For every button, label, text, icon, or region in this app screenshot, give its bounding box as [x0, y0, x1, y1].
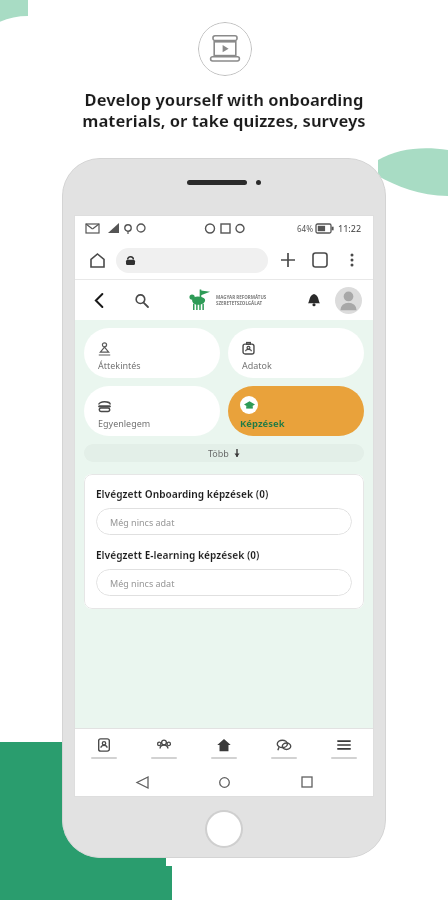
staticText: 11:22 [338, 222, 362, 234]
button[interactable]: Home [194, 729, 254, 767]
button[interactable]: Home [84, 247, 110, 273]
button[interactable]: Profile [335, 287, 362, 314]
staticText: Elvégzett Onboarding képzések (0) [96, 487, 269, 501]
button[interactable]: New tab [276, 248, 300, 272]
button[interactable]: Még nincs adat [96, 508, 352, 535]
button[interactable]: Áttekintés [84, 328, 220, 378]
button[interactable]: Contacts [74, 729, 134, 767]
button[interactable]: Egyenlegem [84, 386, 220, 436]
staticText: MAGYAR REFORMÁTUS [216, 294, 267, 300]
staticText: Egyenlegem [98, 417, 151, 429]
button[interactable]: Menu [314, 729, 374, 767]
staticText: Képzések [240, 417, 285, 430]
staticText: Még nincs adat [110, 516, 175, 528]
staticText: Több [208, 447, 229, 459]
button[interactable]: More options [340, 248, 364, 272]
button[interactable]: Tabs [308, 248, 332, 272]
button[interactable]: Back [86, 287, 112, 313]
button[interactable]: Több [84, 444, 364, 462]
button[interactable]: Képzések [228, 386, 364, 436]
staticText: Még nincs adat [110, 577, 175, 589]
button[interactable]: Notifications [301, 287, 327, 313]
button[interactable] [116, 248, 268, 273]
button[interactable]: Adatok [228, 328, 364, 378]
staticText: 64% [297, 223, 313, 234]
staticText: Develop yourself with onboarding materia… [82, 88, 366, 132]
staticText: SZERETETSZOLGÁLAT [216, 300, 263, 306]
button[interactable]: Még nincs adat [96, 569, 352, 596]
staticText: Adatok [242, 359, 272, 371]
button[interactable]: Back [127, 767, 157, 797]
staticText: Elvégzett E-learning képzések (0) [96, 548, 260, 562]
button[interactable]: Recents [292, 767, 322, 797]
button[interactable]: Messages [254, 729, 314, 767]
button[interactable]: Search [128, 287, 154, 313]
button[interactable]: Groups [134, 729, 194, 767]
staticText: Áttekintés [98, 359, 141, 371]
button[interactable]: Home [209, 767, 239, 797]
